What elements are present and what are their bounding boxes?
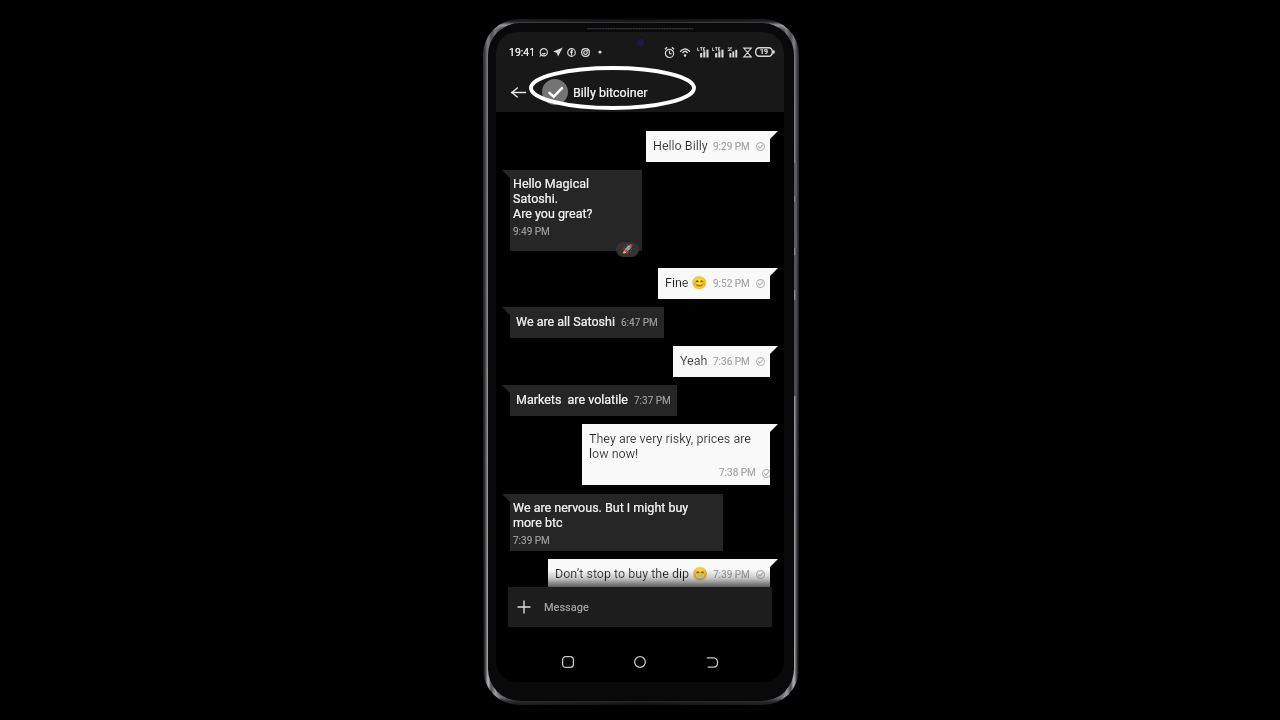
button[interactable]: Billy bitcoiner [542, 79, 648, 105]
button[interactable]: Attach [508, 587, 772, 627]
button[interactable]: Home [624, 646, 656, 678]
staticText: 7:37 PM [634, 395, 671, 407]
button[interactable]: Don’t stop to buy the dip 😁 [548, 559, 778, 590]
staticText: Don’t stop to buy the dip 😁 [555, 567, 708, 582]
button[interactable]: Fine 😊 [658, 268, 778, 299]
button[interactable]: Back [696, 646, 728, 678]
button[interactable]: Recents [552, 646, 584, 678]
button[interactable]: We are nervous. But I might buy more btc [502, 494, 723, 551]
button[interactable]: Hello Billy [646, 131, 778, 162]
staticText: Message [544, 601, 589, 614]
staticText: Billy bitcoiner [573, 85, 648, 100]
button[interactable]: Back [506, 80, 530, 104]
staticText: 7:38 PM [719, 467, 756, 479]
staticText: 🚀 [622, 244, 634, 255]
staticText: 9:52 PM [713, 278, 750, 290]
staticText: 9:49 PM [513, 226, 550, 238]
staticText: Fine 😊 [665, 276, 708, 291]
staticText: 7:36 PM [713, 356, 750, 368]
staticText: 7:39 PM [713, 569, 750, 581]
staticText: Hello Billy [653, 139, 708, 154]
staticText: 6:47 PM [621, 317, 658, 329]
other: Attach [516, 599, 532, 615]
staticText: 19:41 [509, 46, 536, 58]
staticText: Hello Magical Satoshi. Are you great? [513, 177, 593, 222]
staticText: Yeah [680, 354, 708, 369]
button[interactable]: Yeah [673, 346, 778, 377]
staticText: They are very risky, prices are low now! [589, 432, 751, 462]
staticText: 19 [760, 48, 768, 56]
staticText: Markets are volatile [516, 393, 628, 408]
button[interactable]: Markets are volatile [502, 385, 677, 416]
staticText: We are nervous. But I might buy more btc [513, 501, 689, 531]
button[interactable]: Hello Magical Satoshi. Are you great? [502, 170, 642, 251]
staticText: 9:29 PM [713, 141, 750, 153]
staticText: We are all Satoshi [516, 315, 615, 330]
button[interactable]: We are all Satoshi [502, 307, 664, 338]
button[interactable]: They are very risky, prices are low now! [582, 424, 778, 485]
staticText: 7:39 PM [513, 535, 550, 547]
